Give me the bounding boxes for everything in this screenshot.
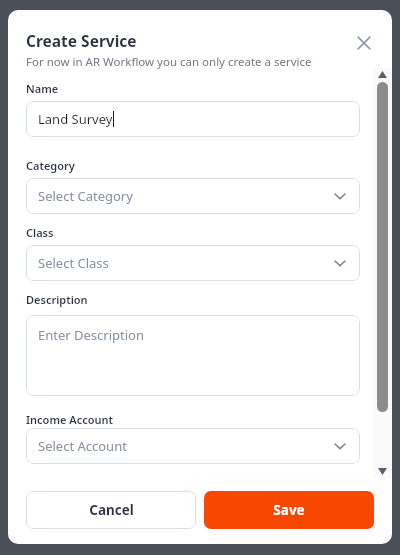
staticText: Create Service — [26, 30, 137, 51]
staticText: Name — [26, 81, 59, 96]
staticText: Income Account — [26, 412, 113, 427]
staticText: Land Survey — [38, 110, 113, 128]
button[interactable]: Select Class — [26, 245, 360, 281]
staticText: Select Category — [38, 187, 133, 205]
staticText: Select Account — [38, 437, 127, 455]
button[interactable]: Select Account — [26, 428, 360, 464]
button[interactable]: Enter Description — [26, 315, 360, 396]
staticText: Category — [26, 158, 75, 173]
staticText: Cancel — [89, 501, 134, 519]
staticText: Enter Description — [38, 326, 144, 344]
button[interactable]: Save — [204, 491, 374, 529]
button[interactable]: Select Category — [26, 178, 360, 214]
button[interactable]: Cancel — [26, 491, 196, 529]
staticText: Select Class — [38, 254, 109, 272]
staticText: Save — [273, 501, 305, 519]
staticText: Class — [26, 225, 54, 240]
staticText: Description — [26, 292, 88, 307]
button[interactable]: Land Survey — [26, 101, 360, 137]
button[interactable]: Close — [348, 27, 380, 59]
staticText: For now in AR Workflow you can only crea… — [26, 54, 312, 70]
